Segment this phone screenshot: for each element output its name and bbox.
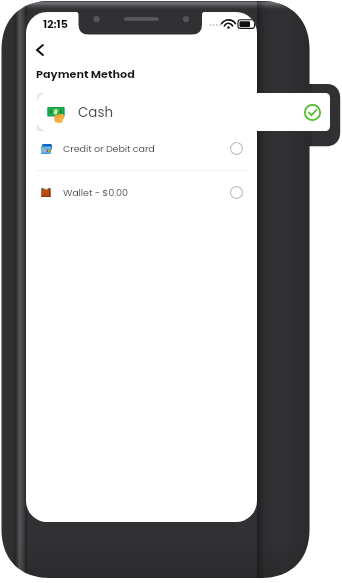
staticText: Cash <box>78 103 113 122</box>
button[interactable]: Cash <box>37 93 330 131</box>
staticText: Payment Method <box>36 66 135 82</box>
staticText: Credit or Debit card <box>63 142 155 155</box>
button[interactable]: Wallet - $0.00 <box>26 171 257 214</box>
button[interactable]: Back <box>26 36 54 64</box>
button[interactable]: Credit or Debit card <box>26 127 257 170</box>
staticText: 12:15 <box>43 16 68 31</box>
staticText: Wallet - $0.00 <box>63 186 128 199</box>
